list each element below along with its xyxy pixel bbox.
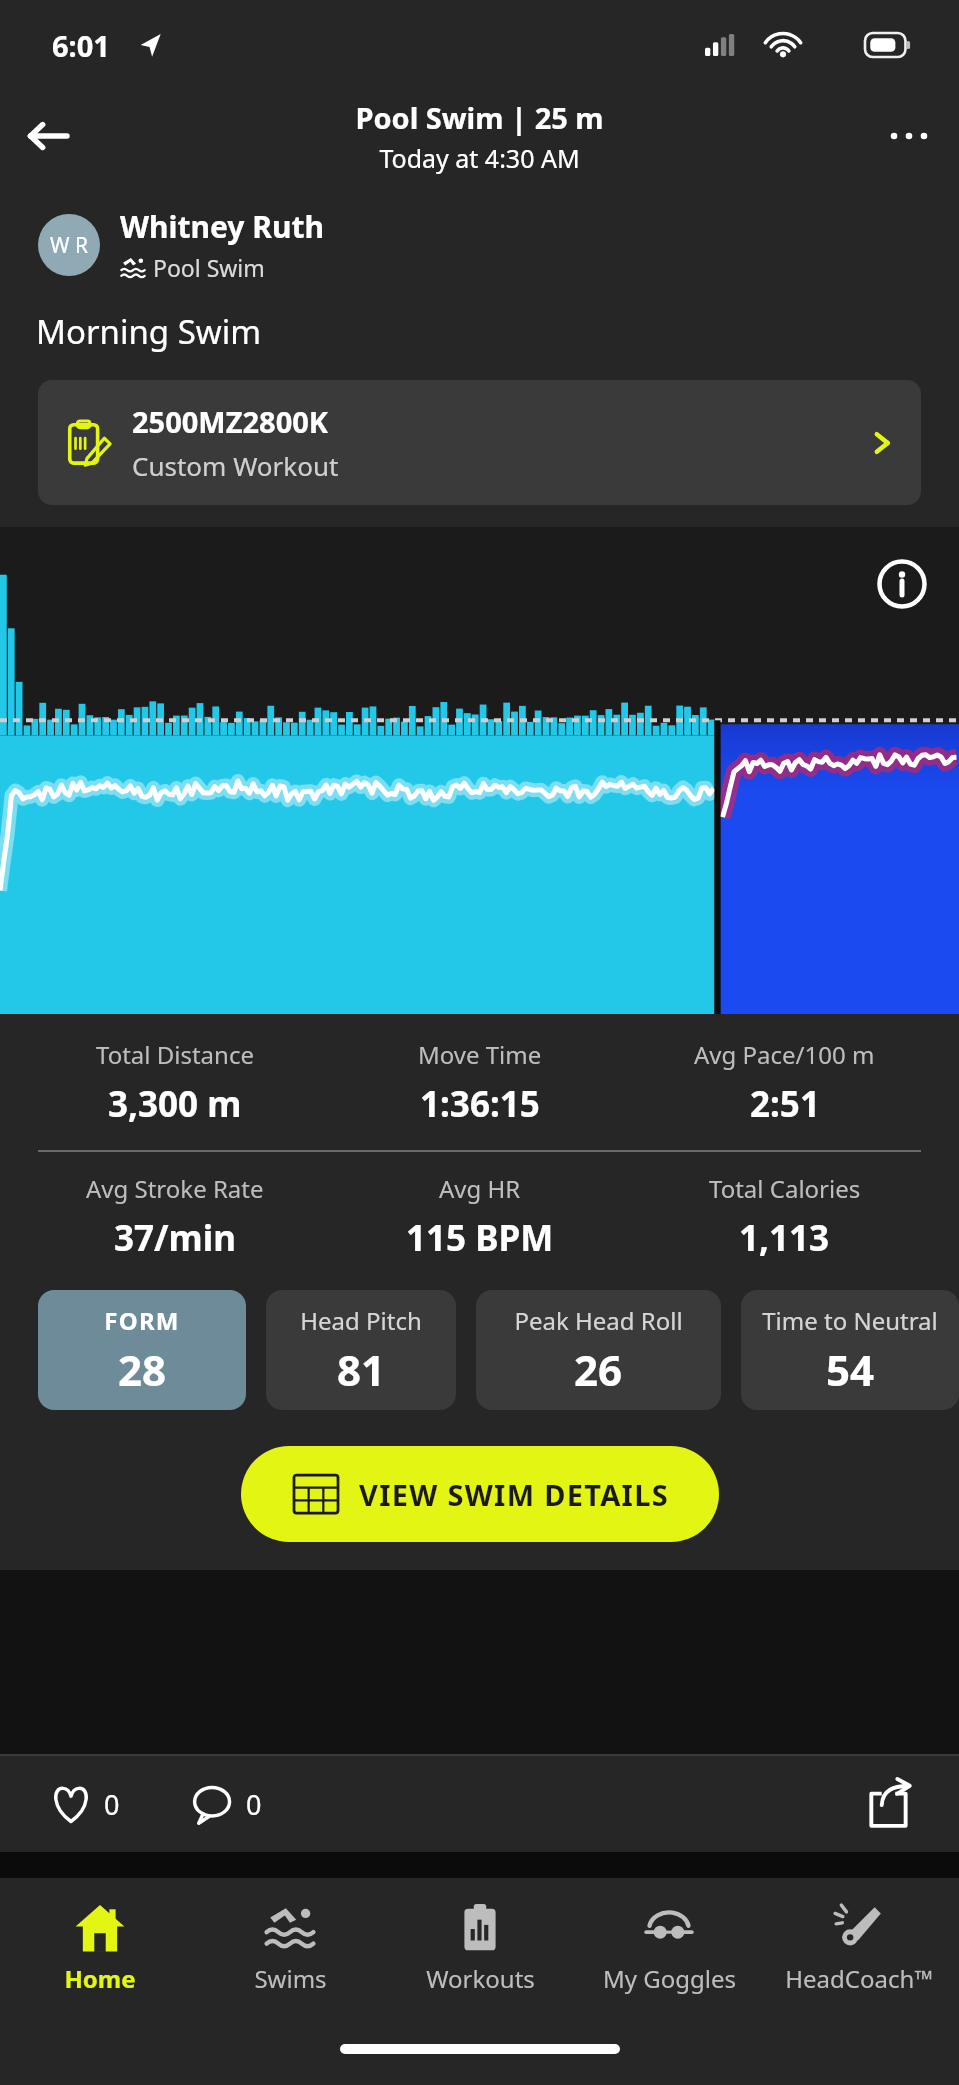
staticText: Time to Neutral (762, 1304, 938, 1337)
button[interactable]: My Goggles (579, 1898, 759, 1999)
staticText: FORM (104, 1304, 180, 1337)
button[interactable]: 0 (44, 1777, 124, 1831)
staticText: Move Time (418, 1038, 542, 1071)
staticText: Pool Swim (153, 252, 265, 283)
button[interactable]: FORM (38, 1290, 246, 1410)
staticText: Workouts (426, 1962, 535, 1995)
button[interactable]: More options (871, 98, 947, 174)
staticText: Swims (254, 1962, 327, 1995)
button[interactable]: Time to Neutral (741, 1290, 959, 1410)
staticText: 26 (574, 1341, 623, 1396)
staticText: 2:51 (750, 1080, 820, 1128)
staticText: 81 (337, 1341, 386, 1396)
staticText: Pool Swim | 25 m (355, 98, 604, 137)
staticText: 37/min (114, 1214, 236, 1262)
staticText: W R (50, 231, 89, 260)
button[interactable]: HeadCoach™ (769, 1898, 949, 1999)
staticText: Whitney Ruth (120, 206, 324, 247)
staticText: 0 (246, 1786, 262, 1823)
button[interactable]: 0 (186, 1777, 266, 1831)
button[interactable]: Swims (200, 1898, 380, 1999)
staticText: 28 (118, 1341, 167, 1396)
staticText: Total Calories (709, 1172, 861, 1205)
staticText: 2500MZ2800K (132, 402, 329, 441)
staticText: Total Distance (96, 1038, 254, 1071)
button[interactable]: Peak Head Roll (476, 1290, 721, 1410)
button[interactable]: 2500MZ2800K (38, 380, 921, 505)
staticText: Head Pitch (300, 1304, 422, 1337)
staticText: 1:36:15 (420, 1080, 540, 1128)
staticText: 0 (104, 1786, 120, 1823)
staticText: Home (64, 1962, 136, 1995)
staticText: Avg Stroke Rate (86, 1172, 264, 1205)
staticText: Morning Swim (36, 309, 262, 354)
staticText: Avg HR (439, 1172, 521, 1205)
button[interactable]: Info (873, 555, 931, 613)
staticText: HeadCoach™ (785, 1962, 933, 1995)
button[interactable]: Workouts (390, 1898, 570, 1999)
staticText: Today at 4:30 AM (379, 141, 580, 175)
staticText: 1,113 (739, 1214, 830, 1262)
button[interactable]: Back (10, 98, 86, 174)
staticText: 115 BPM (406, 1214, 554, 1262)
staticText: 6:01 (52, 26, 110, 65)
staticText: 54 (826, 1341, 875, 1396)
staticText: My Goggles (603, 1962, 736, 1995)
staticText: Avg Pace/100 m (694, 1038, 875, 1071)
staticText: 3,300 m (108, 1080, 242, 1128)
staticText: VIEW SWIM DETAILS (359, 1475, 669, 1514)
staticText: Peak Head Roll (514, 1304, 683, 1337)
button[interactable]: Head Pitch (266, 1290, 456, 1410)
staticText: Custom Workout (132, 448, 339, 483)
button[interactable]: Share (859, 1774, 919, 1834)
button[interactable]: Home (10, 1898, 190, 1999)
button[interactable]: VIEW SWIM DETAILS (241, 1446, 719, 1542)
